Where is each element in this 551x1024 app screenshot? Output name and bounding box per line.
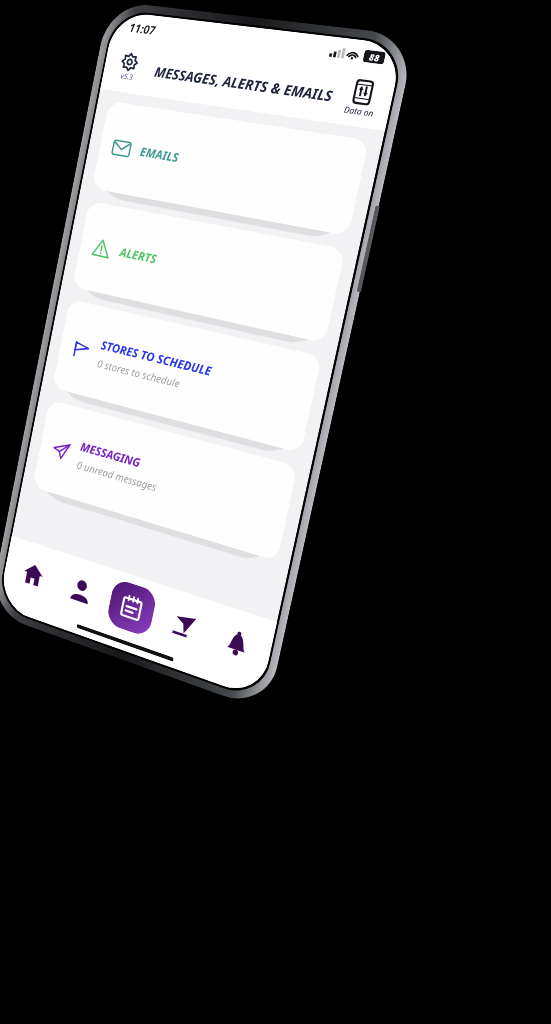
button[interactable]: Data on xyxy=(339,76,384,122)
button[interactable]: Notifications xyxy=(209,612,266,675)
button[interactable]: Home xyxy=(9,546,58,604)
staticText: 0 unread messages xyxy=(76,457,158,494)
staticText: 88 xyxy=(368,50,382,64)
button[interactable]: Tasks xyxy=(105,578,158,638)
button[interactable]: EMAILS xyxy=(92,101,369,236)
button[interactable]: MESSAGING xyxy=(32,399,298,561)
staticText: EMAILS xyxy=(139,143,181,166)
staticText: Data on xyxy=(343,103,375,119)
staticText: ALERTS xyxy=(118,244,158,268)
button[interactable]: Settings xyxy=(113,48,145,86)
staticText: 0 stores to schedule xyxy=(96,356,182,391)
button[interactable]: Send xyxy=(157,595,211,656)
staticText: STORES TO SCHEDULE xyxy=(99,337,213,380)
staticText: MESSAGES, ALERTS & EMAILS xyxy=(153,62,335,106)
button[interactable]: ALERTS xyxy=(72,201,345,343)
button[interactable]: STORES TO SCHEDULE xyxy=(52,299,322,453)
staticText: v5.3 xyxy=(120,71,134,83)
staticText: MESSAGING xyxy=(79,439,142,471)
staticText: 11:07 xyxy=(128,19,157,38)
button[interactable]: Profile xyxy=(56,561,107,620)
